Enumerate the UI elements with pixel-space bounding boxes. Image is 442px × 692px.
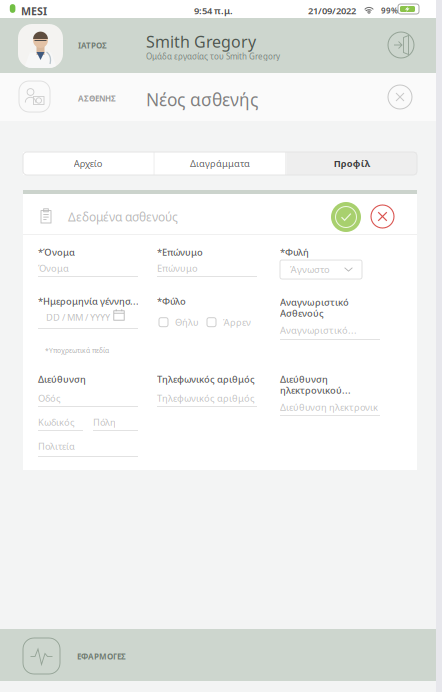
staticText: Ομάδα εργασίας του Smith Gregory xyxy=(146,51,280,62)
staticText: ΑΣΘΕΝΗΣ xyxy=(78,93,116,104)
staticText: Διεύθυνση xyxy=(280,373,328,385)
staticText: *Φύλο xyxy=(157,295,186,307)
button[interactable]: Ακύρωση xyxy=(371,205,394,228)
staticText: *Επώνυμο xyxy=(157,246,203,258)
staticText: *Φυλή xyxy=(280,246,309,258)
staticText: Οδός xyxy=(38,392,61,404)
staticText: Ασθενούς xyxy=(280,307,324,319)
button[interactable]: Αποσύνδεση xyxy=(388,32,414,58)
button[interactable]: Κλείσιμο xyxy=(388,85,412,109)
button[interactable]: Διαγράμματα xyxy=(155,152,285,175)
staticText: Θήλυ xyxy=(175,316,199,328)
staticText: Διεύθυνση xyxy=(38,373,86,385)
staticText: 99% xyxy=(381,5,398,16)
staticText: *Υποχρεωτικά πεδία xyxy=(45,346,109,355)
staticText: Τηλεφωνικός αριθμός xyxy=(157,373,255,385)
staticText: Άρρεν xyxy=(223,316,251,328)
staticText: *Όνομα xyxy=(38,246,75,258)
staticText: Διεύθυνση ηλεκτρονικ xyxy=(280,401,378,413)
staticText: *Ημερομηνία γέννησ... xyxy=(38,295,139,307)
staticText: Αναγνωριστικό xyxy=(280,296,349,308)
staticText: DD / MM / YYYY xyxy=(46,311,110,323)
staticText: Προφίλ xyxy=(334,157,370,170)
button[interactable]: Αποθήκευση xyxy=(331,202,361,232)
staticText: 9:54 π.μ. xyxy=(194,4,233,17)
button[interactable]: Αρχείο xyxy=(23,152,154,175)
staticText: MESI xyxy=(21,4,47,18)
staticText: Τηλεφωνικός αριθμός xyxy=(157,392,255,404)
staticText: Πόλη xyxy=(93,416,116,428)
staticText: ηλεκτρονικού... xyxy=(280,384,351,396)
staticText: 21/09/2022 xyxy=(308,4,356,17)
button[interactable]: Προφίλ xyxy=(286,152,417,175)
button[interactable]: ΕΦΑΡΜΟΓΕΣ xyxy=(0,629,436,681)
staticText: ΙΑΤΡΟΣ xyxy=(78,40,107,51)
staticText: Πολιτεία xyxy=(38,440,75,452)
staticText: Smith Gregory xyxy=(146,31,256,52)
staticText: ΕΦΑΡΜΟΓΕΣ xyxy=(77,651,126,662)
staticText: Δεδομένα ασθενούς xyxy=(68,209,178,225)
staticText: Νέος ασθενής xyxy=(146,88,258,111)
staticText: Όνομα xyxy=(38,262,69,274)
staticText: Αρχείο xyxy=(74,157,103,170)
staticText: Διαγράμματα xyxy=(190,157,250,170)
staticText: Κωδικός xyxy=(38,416,75,428)
staticText: Άγνωστο xyxy=(290,263,330,276)
staticText: Επώνυμο xyxy=(157,262,198,274)
staticText: Αναγνωριστικό... xyxy=(280,324,357,336)
